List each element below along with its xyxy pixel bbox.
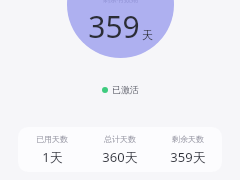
staticText: 剩余天数 <box>172 134 204 144</box>
staticText: 360天 <box>102 148 138 166</box>
staticText: 已用天数 <box>36 134 68 144</box>
staticText: 359天 <box>170 148 206 166</box>
button[interactable]: 已用天数 <box>18 127 222 172</box>
staticText: 天 <box>142 28 153 42</box>
staticText: 359 <box>88 6 140 47</box>
staticText: 已激活 <box>112 84 139 95</box>
button[interactable]: 已激活 <box>98 82 143 97</box>
staticText: 剩余有效期 <box>103 0 138 4</box>
staticText: 1天 <box>42 148 63 166</box>
button[interactable]: 剩余有效期 <box>67 0 174 58</box>
staticText: 总计天数 <box>104 134 136 144</box>
